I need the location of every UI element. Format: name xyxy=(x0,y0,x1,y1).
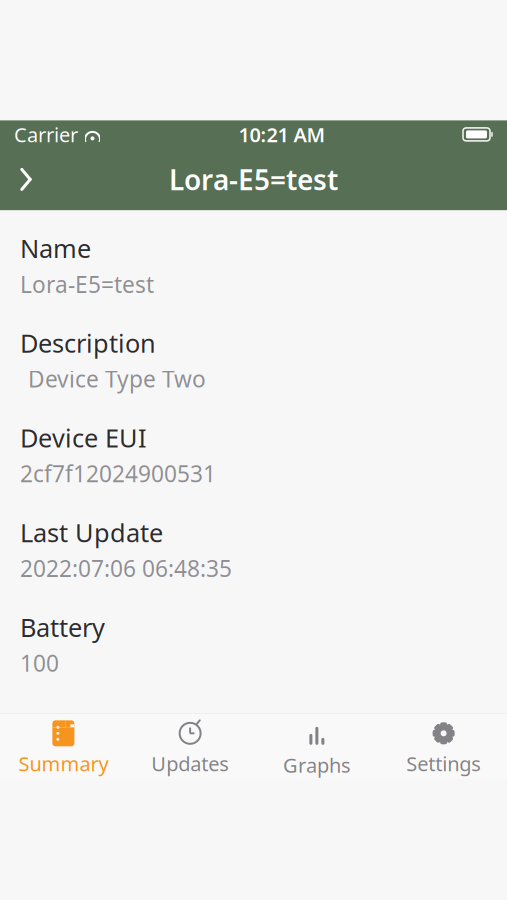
staticText: Carrier xyxy=(14,121,78,148)
staticText: Battery xyxy=(20,610,105,644)
staticText: Lora-E5=test xyxy=(169,161,338,198)
staticText: 2cf7f12024900531 xyxy=(20,458,216,489)
staticText: 100 xyxy=(20,648,59,678)
staticText: Description xyxy=(20,326,156,360)
staticText: Settings xyxy=(406,750,481,777)
staticText: 2022:07:06 06:48:35 xyxy=(20,553,232,583)
staticText: Summary xyxy=(18,750,108,777)
button[interactable]: Settings xyxy=(380,718,507,780)
staticText: Updates xyxy=(151,750,229,777)
staticText: Last Update xyxy=(20,516,163,549)
staticText: Name xyxy=(20,231,91,265)
button[interactable]: Back xyxy=(0,154,52,204)
staticText: Lora-E5=test xyxy=(20,269,154,299)
button[interactable]: Graphs xyxy=(253,718,380,780)
staticText: Graphs xyxy=(283,752,351,778)
staticText: Device EUI xyxy=(20,421,147,454)
staticText: 10:21 AM xyxy=(238,121,325,148)
button[interactable]: Updates xyxy=(127,718,254,780)
button[interactable]: Summary xyxy=(0,718,127,780)
staticText: Device Type Two xyxy=(22,364,206,394)
